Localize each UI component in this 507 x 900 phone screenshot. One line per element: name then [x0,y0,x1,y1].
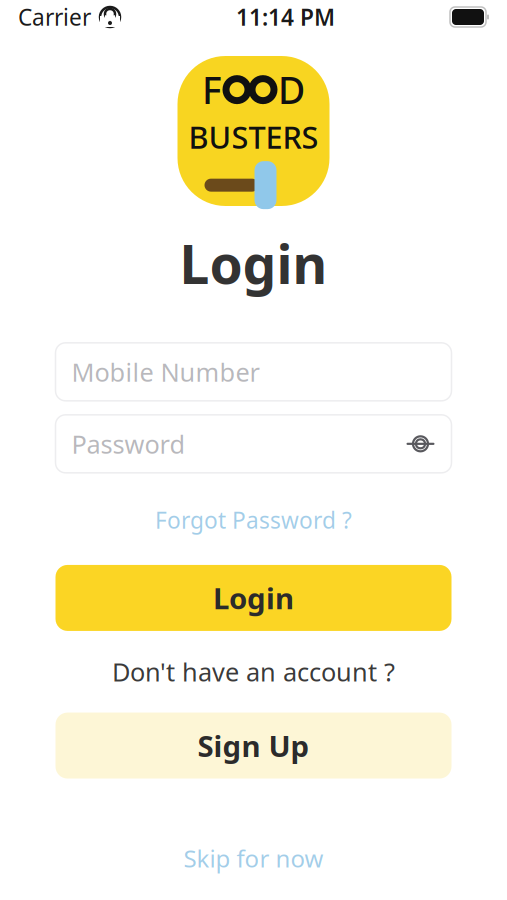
staticText: Carrier [18,2,91,32]
staticText: Password [71,427,185,461]
staticText: Sign Up [197,726,309,765]
button[interactable]: Skip for now [171,836,335,880]
staticText: Don't have an account ? [112,655,395,688]
staticText: Login [213,578,294,617]
button[interactable]: Mobile Number [55,343,451,401]
staticText: D [278,65,305,114]
staticText: BUSTERS [188,116,318,157]
button[interactable]: Login [55,565,451,631]
staticText: F [202,65,222,114]
button[interactable]: Forgot Password ? [145,501,362,539]
staticText: Forgot Password ? [155,505,352,535]
staticText: Login [179,228,327,299]
staticText: Mobile Number [71,355,259,389]
staticText: 11:14 PM [236,2,335,32]
button[interactable]: Password [55,415,451,473]
staticText: Skip for now [183,842,323,874]
button[interactable]: Sign Up [55,713,451,779]
